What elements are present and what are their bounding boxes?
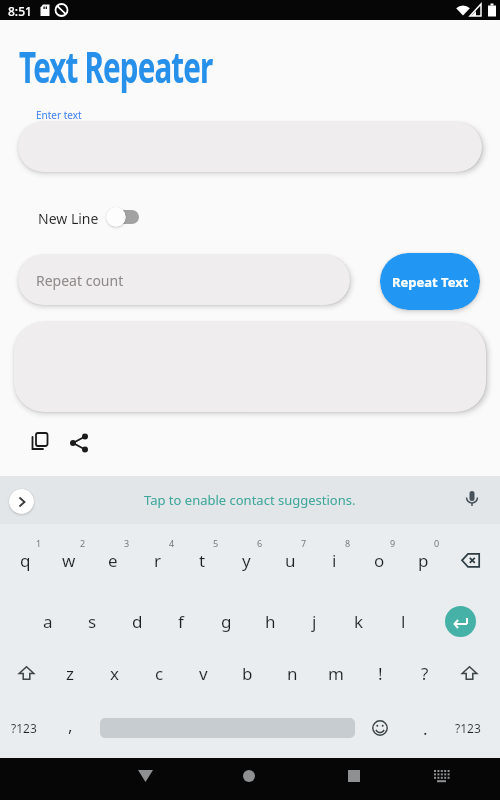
staticText: ?123 bbox=[11, 720, 37, 736]
staticText: 1 bbox=[36, 537, 42, 549]
button[interactable] bbox=[106, 207, 139, 227]
staticText: New Line bbox=[38, 209, 99, 228]
staticText: w bbox=[62, 549, 76, 572]
staticText: b bbox=[242, 662, 253, 685]
staticText: 2 bbox=[80, 537, 86, 549]
staticText: s bbox=[88, 610, 97, 633]
staticText: f bbox=[178, 610, 184, 633]
button[interactable] bbox=[9, 489, 34, 514]
staticText: ?123 bbox=[455, 720, 481, 736]
staticText: Repeat Text bbox=[392, 273, 469, 291]
button[interactable] bbox=[234, 763, 264, 793]
staticText: x bbox=[110, 662, 119, 685]
staticText: Repeat count bbox=[36, 271, 124, 290]
staticText: z bbox=[66, 662, 74, 685]
staticText: l bbox=[401, 610, 406, 633]
staticText: a bbox=[43, 610, 53, 633]
staticText: 4 bbox=[169, 537, 175, 549]
staticText: . bbox=[423, 717, 428, 740]
staticText: e bbox=[108, 549, 118, 572]
button[interactable] bbox=[426, 763, 456, 793]
staticText: ? bbox=[421, 662, 429, 685]
button[interactable] bbox=[445, 606, 476, 637]
staticText: 5 bbox=[213, 537, 219, 549]
staticText: Text Repeater bbox=[19, 38, 212, 96]
staticText: y bbox=[242, 549, 251, 572]
staticText: t bbox=[199, 549, 206, 572]
staticText: 3 bbox=[124, 537, 130, 549]
staticText: 7 bbox=[301, 537, 307, 549]
staticText: 9 bbox=[390, 537, 396, 549]
staticText: n bbox=[287, 662, 298, 685]
staticText: q bbox=[20, 549, 31, 572]
button[interactable]: Repeat Text bbox=[380, 253, 480, 310]
staticText: 8:51 bbox=[8, 3, 32, 19]
staticText: r bbox=[154, 549, 162, 572]
staticText: c bbox=[155, 662, 164, 685]
button[interactable] bbox=[69, 433, 89, 453]
staticText: , bbox=[68, 714, 73, 737]
staticText: 8 bbox=[345, 537, 351, 549]
button[interactable] bbox=[339, 763, 369, 793]
staticText: m bbox=[328, 662, 344, 685]
staticText: j bbox=[312, 610, 317, 633]
staticText: ! bbox=[378, 662, 383, 685]
staticText: k bbox=[354, 610, 364, 633]
staticText: h bbox=[265, 610, 276, 633]
button[interactable]: Repeat count bbox=[18, 255, 350, 305]
staticText: i bbox=[332, 549, 337, 572]
staticText: 0 bbox=[434, 537, 440, 549]
staticText: p bbox=[418, 549, 429, 572]
button[interactable] bbox=[28, 432, 50, 454]
staticText: o bbox=[374, 549, 385, 572]
staticText: Enter text bbox=[36, 108, 82, 122]
button[interactable] bbox=[130, 763, 160, 793]
staticText: Tap to enable contact suggestions. bbox=[144, 491, 356, 509]
staticText: d bbox=[132, 610, 143, 633]
staticText: u bbox=[285, 549, 296, 572]
staticText: 6 bbox=[257, 537, 263, 549]
staticText: g bbox=[221, 610, 232, 633]
staticText: v bbox=[199, 662, 208, 685]
